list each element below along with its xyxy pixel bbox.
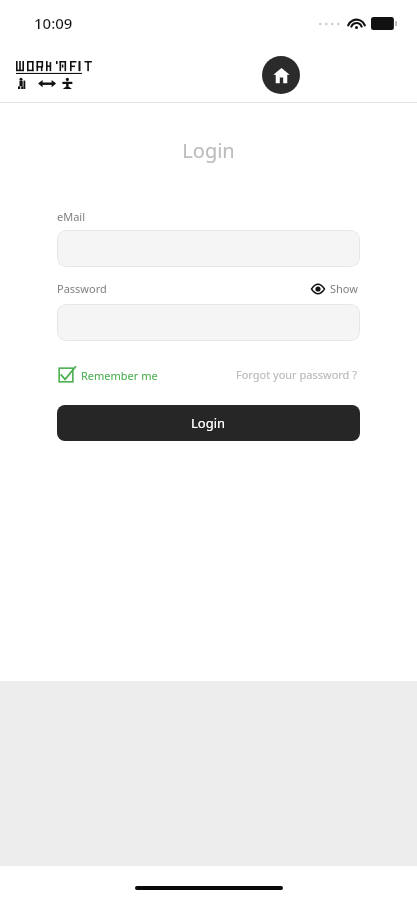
button[interactable]: Forgot your password ? (234, 365, 360, 384)
button[interactable]: Remember me (57, 366, 158, 384)
button[interactable] (57, 230, 360, 267)
staticText: Remember me (81, 368, 158, 383)
button[interactable] (57, 304, 360, 341)
staticText: Login (191, 414, 226, 432)
staticText: Login (0, 137, 417, 164)
staticText: 10:09 (34, 13, 73, 33)
button[interactable]: Home (262, 56, 300, 94)
button[interactable]: Show (309, 279, 360, 298)
button[interactable]: Login (57, 405, 360, 441)
staticText: Show (330, 281, 358, 296)
button[interactable] (16, 61, 84, 89)
staticText: Password (57, 281, 107, 296)
staticText: eMail (57, 209, 86, 224)
